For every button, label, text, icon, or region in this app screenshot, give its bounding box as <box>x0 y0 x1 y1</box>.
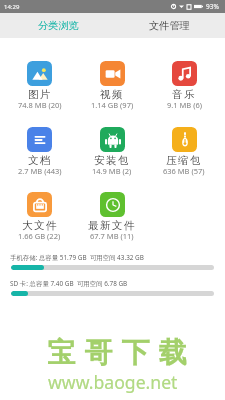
staticText: 636 MB (57) <box>163 166 205 176</box>
button[interactable]: 最新文件 <box>76 192 148 242</box>
button[interactable]: 图片 <box>3 61 76 111</box>
staticText: 图片 <box>28 88 52 101</box>
staticText: 安装包 <box>94 154 130 167</box>
staticText: 宝哥下载 <box>43 335 191 370</box>
staticText: 手机存储: 总容量 51.79 GB 可用空间 43.32 GB <box>10 253 144 262</box>
staticText: 视频 <box>100 88 124 101</box>
staticText: 音乐 <box>172 88 196 101</box>
button[interactable]: 音乐 <box>148 61 220 111</box>
staticText: 2.7 MB (443) <box>18 166 62 176</box>
staticText: 大文件 <box>22 219 58 232</box>
staticText: 93% <box>206 2 219 11</box>
staticText: 最新文件 <box>88 219 136 232</box>
staticText: 压缩包 <box>166 154 202 167</box>
staticText: 14.9 MB (2) <box>92 166 132 176</box>
button[interactable]: 文档 <box>3 127 76 177</box>
staticText: 文档 <box>28 154 52 167</box>
button[interactable]: 安装包 <box>76 127 148 177</box>
staticText: 14:29 <box>4 3 20 11</box>
staticText: SD 卡: 总容量 7.40 GB 可用空间 6.78 GB <box>10 279 128 288</box>
button[interactable]: 大文件 <box>3 192 76 242</box>
button[interactable]: 压缩包 <box>148 127 220 177</box>
staticText: 74.8 MB (20) <box>18 100 62 110</box>
staticText: 9.1 MB (6) <box>167 100 202 110</box>
staticText: 1.14 GB (97) <box>91 100 134 110</box>
staticText: www.baoge.net <box>48 370 178 394</box>
staticText: 分类浏览 <box>38 19 79 32</box>
button[interactable]: 分类浏览 <box>0 13 112 38</box>
staticText: 67.7 MB (11) <box>90 231 134 241</box>
button[interactable]: 文件管理 <box>112 13 225 38</box>
staticText: 文件管理 <box>149 19 190 32</box>
staticText: 1.66 GB (22) <box>18 231 61 241</box>
button[interactable]: 视频 <box>76 61 148 111</box>
